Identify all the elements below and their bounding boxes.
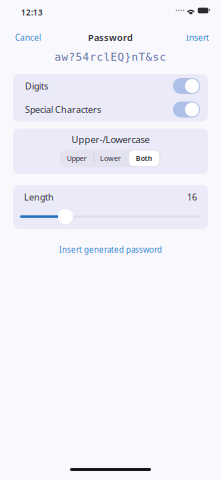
- staticText: Special Characters: [25, 103, 101, 116]
- staticText: Digits: [25, 80, 48, 92]
- staticText: Insert: [186, 32, 209, 43]
- button[interactable]: Insert: [182, 27, 213, 48]
- button[interactable]: Lower: [94, 149, 127, 167]
- staticText: Upper: [67, 153, 87, 163]
- button[interactable]: Special Characters: [13, 98, 208, 121]
- button[interactable]: Cancel: [11, 27, 45, 48]
- staticText: Both: [136, 153, 153, 163]
- button[interactable]: Both: [127, 149, 161, 167]
- staticText: Length: [24, 191, 54, 203]
- staticText: Password: [88, 31, 133, 44]
- staticText: Lower: [100, 153, 121, 163]
- staticText: 16: [187, 191, 197, 203]
- staticText: Upper-/Lowercase: [71, 133, 149, 146]
- button[interactable]: Insert generated password: [51, 238, 170, 261]
- staticText: Insert generated password: [59, 244, 162, 255]
- staticText: 12:13: [21, 7, 43, 18]
- button[interactable]: Upper: [60, 149, 94, 167]
- staticText: Cancel: [15, 32, 41, 43]
- staticText: aw?54rclEQ}nT&sc: [54, 51, 166, 63]
- button[interactable]: Digits: [13, 74, 208, 98]
- button[interactable]: Length: [58, 209, 73, 224]
